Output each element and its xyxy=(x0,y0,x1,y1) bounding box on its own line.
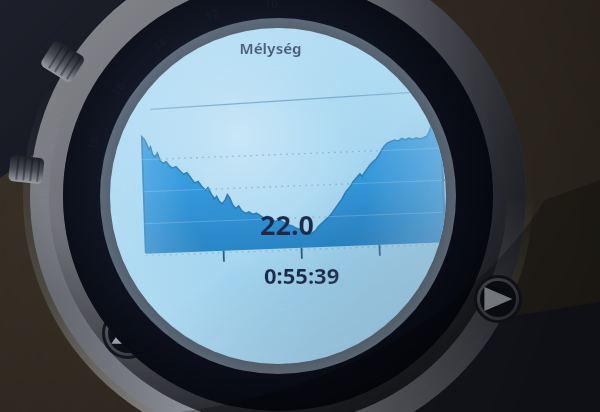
button[interactable]: Garmin dive watch showing depth profile xyxy=(0,0,600,412)
